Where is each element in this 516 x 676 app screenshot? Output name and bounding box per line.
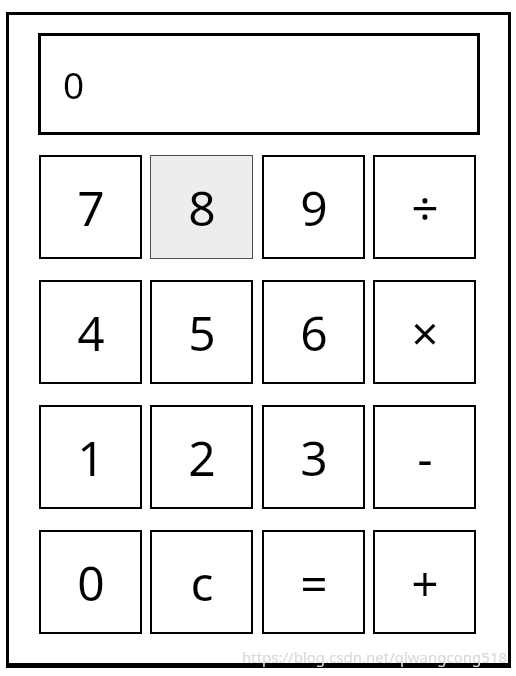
- button[interactable]: 1: [39, 405, 142, 509]
- staticText: ÷: [411, 175, 439, 240]
- button[interactable]: 9: [262, 155, 365, 259]
- staticText: 4: [77, 300, 105, 365]
- staticText: c: [190, 550, 214, 615]
- staticText: 0: [77, 550, 105, 615]
- staticText: +: [411, 550, 439, 615]
- staticText: =: [300, 550, 328, 615]
- button[interactable]: =: [262, 530, 365, 634]
- button[interactable]: +: [373, 530, 476, 634]
- button[interactable]: 2: [150, 405, 253, 509]
- button[interactable]: c: [150, 530, 253, 634]
- staticText: 7: [77, 175, 105, 240]
- staticText: 6: [300, 300, 328, 365]
- staticText: https://blog.csdn.net/qlwangcong518: [242, 647, 508, 667]
- button[interactable]: 6: [262, 280, 365, 384]
- button[interactable]: 0: [39, 530, 142, 634]
- staticText: 9: [300, 175, 328, 240]
- button[interactable]: 8: [150, 155, 253, 259]
- button[interactable]: ÷: [373, 155, 476, 259]
- staticText: 1: [77, 425, 105, 490]
- staticText: 3: [300, 425, 328, 490]
- staticText: 8: [188, 175, 216, 240]
- staticText: 2: [188, 425, 216, 490]
- button[interactable]: 3: [262, 405, 365, 509]
- button[interactable]: 5: [150, 280, 253, 384]
- staticText: 0: [63, 59, 85, 109]
- button[interactable]: 0: [38, 33, 480, 135]
- button[interactable]: 4: [39, 280, 142, 384]
- staticText: ×: [411, 300, 439, 365]
- button[interactable]: 7: [39, 155, 142, 259]
- staticText: -: [417, 425, 433, 490]
- staticText: 5: [188, 300, 216, 365]
- button[interactable]: ×: [373, 280, 476, 384]
- button[interactable]: -: [373, 405, 476, 509]
